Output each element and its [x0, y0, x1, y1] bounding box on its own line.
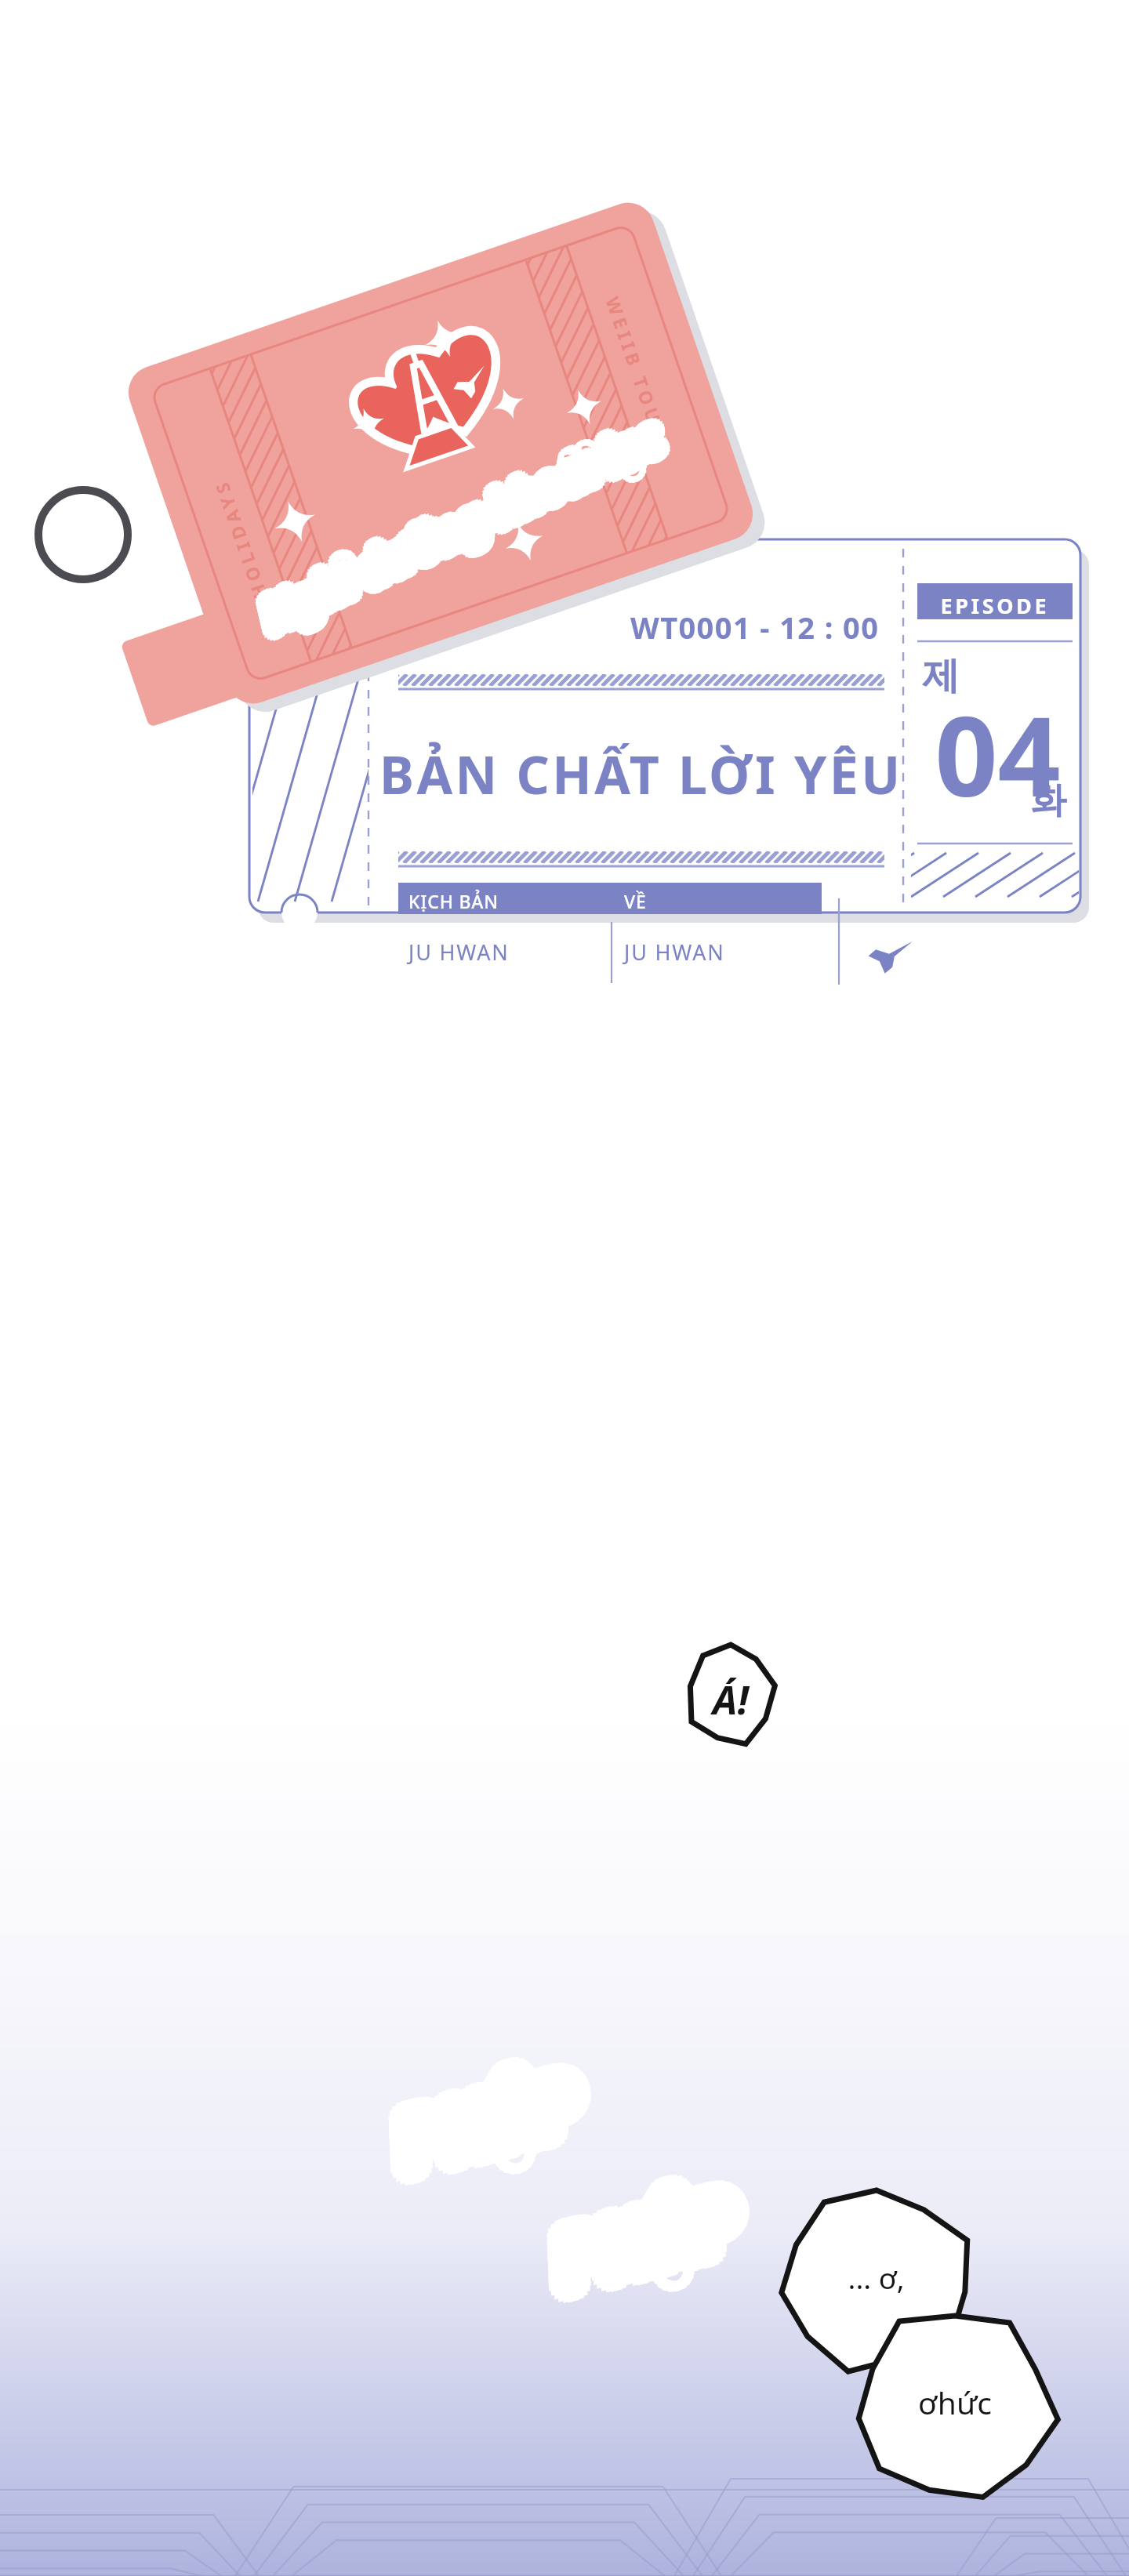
- button[interactable]: Webtoon episode 4 ticket page: [0, 0, 1129, 2576]
